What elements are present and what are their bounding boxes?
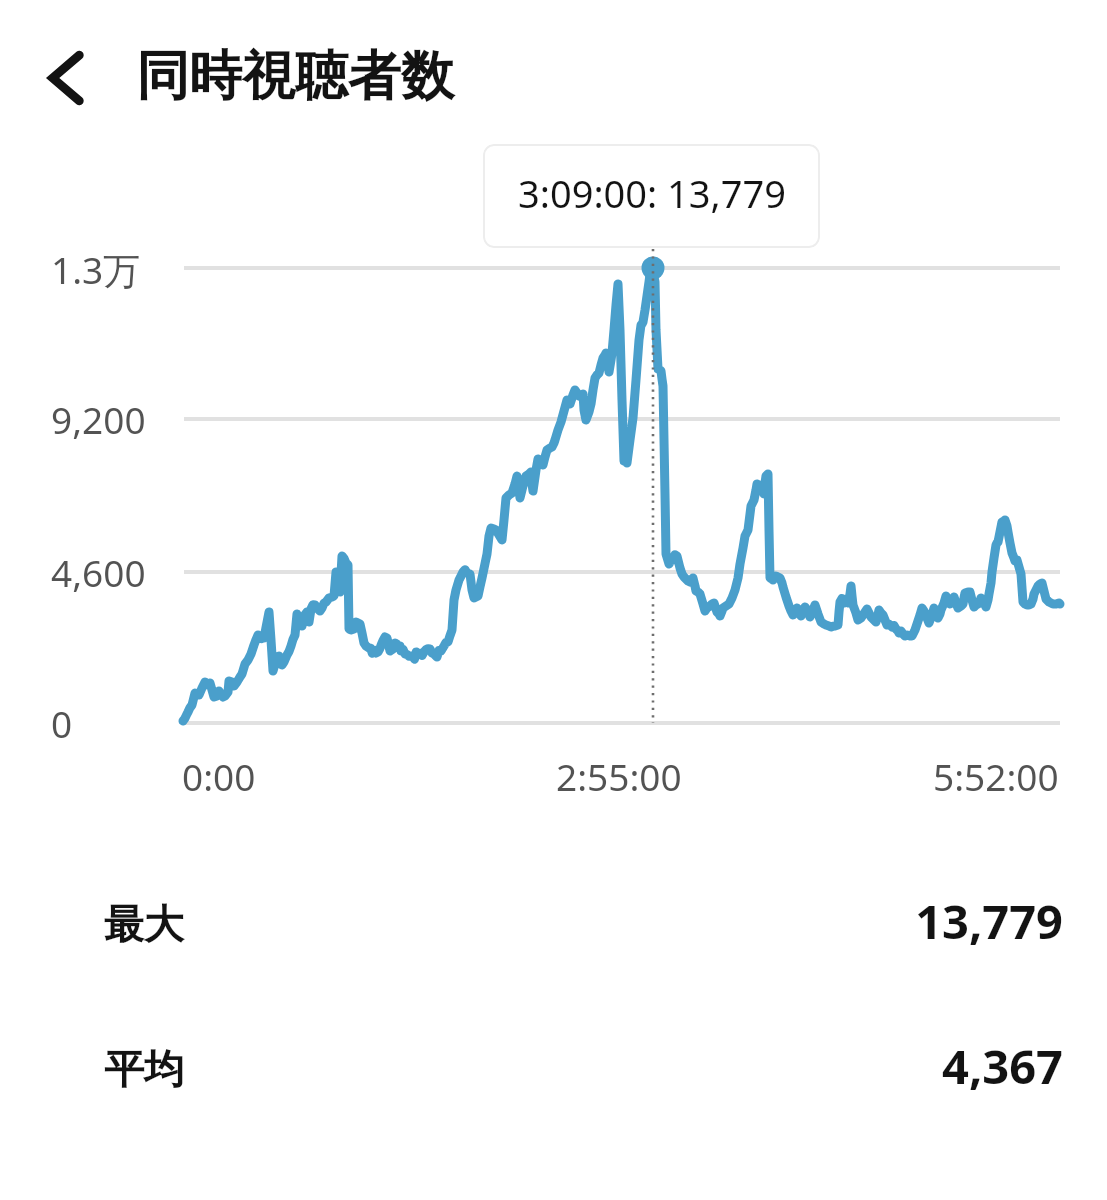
staticText: 最大: [104, 899, 184, 949]
staticText: 4,367: [942, 1034, 1063, 1098]
staticText: 5:52:00: [933, 751, 1059, 801]
staticText: 同時視聴者数: [136, 43, 454, 110]
staticText: 2:55:00: [556, 751, 682, 801]
staticText: 0: [51, 698, 73, 748]
staticText: 3:09:00: 13,779: [518, 167, 786, 219]
staticText: 0:00: [182, 751, 256, 801]
button[interactable]: 平均: [0, 1012, 1107, 1120]
staticText: 1.3万: [51, 244, 141, 295]
staticText: 9,200: [51, 394, 146, 444]
button[interactable]: 最大: [0, 867, 1107, 975]
staticText: 13,779: [915, 889, 1063, 953]
button[interactable]: Back: [28, 40, 104, 116]
staticText: 平均: [104, 1044, 184, 1094]
staticText: 4,600: [51, 547, 146, 597]
button[interactable]: Viewer chart: [170, 240, 1070, 740]
